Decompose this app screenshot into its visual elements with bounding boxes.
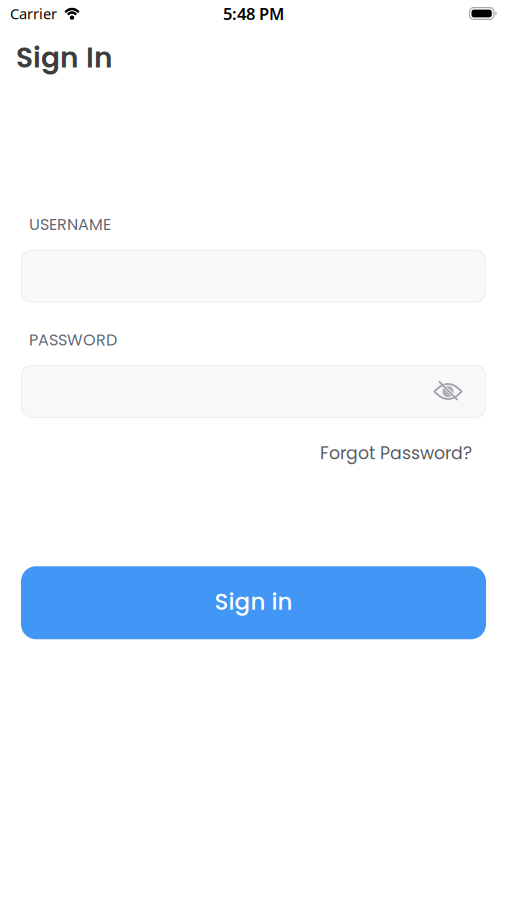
staticText: Sign In	[16, 38, 113, 77]
staticText: Forgot Password?	[320, 441, 472, 465]
staticText: PASSWORD	[29, 329, 117, 351]
staticText: 5:48 PM	[223, 2, 284, 25]
staticText: Sign in	[214, 586, 292, 618]
staticText: Carrier	[10, 4, 57, 23]
button[interactable]: Show password	[434, 377, 462, 405]
button[interactable]: Sign in	[0, 566, 507, 639]
button[interactable]: Forgot Password?	[320, 441, 472, 465]
staticText: USERNAME	[29, 213, 111, 236]
